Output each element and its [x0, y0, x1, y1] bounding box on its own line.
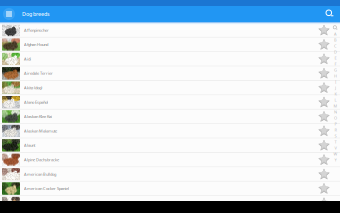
staticText: E — [334, 55, 336, 61]
button[interactable]: American Cocker Spaniel — [0, 182, 340, 196]
button[interactable]: M — [332, 103, 339, 109]
staticText: K — [334, 91, 336, 97]
button[interactable]: R — [332, 127, 339, 133]
staticText: V — [334, 145, 336, 151]
staticText: O — [334, 115, 337, 121]
button[interactable]: I — [332, 79, 339, 85]
button[interactable]: Alaunt — [0, 139, 340, 153]
staticText: C — [334, 43, 337, 49]
button[interactable]: American Bulldog — [0, 167, 340, 182]
button[interactable]: Alano Español — [0, 95, 340, 110]
staticText: F — [334, 61, 336, 67]
staticText: Alaskan Malamute — [24, 128, 57, 133]
button[interactable]: A — [332, 31, 339, 37]
staticText: Y — [334, 157, 336, 163]
staticText: Alaunt — [24, 143, 35, 148]
button[interactable]: Y — [332, 157, 339, 163]
staticText: B — [334, 37, 337, 43]
button[interactable]: B — [332, 37, 339, 43]
staticText: N — [334, 109, 337, 115]
button[interactable]: Alaskan Klee Kai — [0, 110, 340, 124]
button[interactable]: F — [332, 61, 339, 67]
button[interactable]: Afghan Hound — [0, 38, 340, 52]
button[interactable]: W — [332, 151, 339, 157]
button[interactable]: C — [332, 43, 339, 49]
staticText: M — [333, 103, 337, 109]
staticText: P — [334, 121, 336, 127]
button[interactable]: L — [332, 97, 339, 103]
staticText: T — [334, 139, 336, 145]
staticText: Afghan Hound — [24, 42, 48, 47]
staticText: Akita (dog) — [24, 85, 42, 90]
staticText: H — [334, 73, 337, 79]
button[interactable]: E — [332, 55, 339, 61]
staticText: A — [334, 31, 337, 37]
button[interactable]: Search breeds — [332, 25, 339, 31]
staticText: L — [334, 97, 336, 103]
staticText: W — [333, 151, 337, 157]
button[interactable]: O — [332, 115, 339, 121]
staticText: D — [334, 49, 337, 55]
staticText: Alaskan Klee Kai — [24, 114, 52, 119]
button[interactable]: American Eskimo Dog — [0, 196, 340, 211]
button[interactable]: H — [332, 73, 339, 79]
staticText: J — [335, 85, 336, 91]
staticText: G — [334, 67, 337, 73]
staticText: S — [334, 133, 336, 139]
button[interactable]: Open navigation menu — [0, 6, 21, 22]
button[interactable]: Aidi — [0, 52, 340, 67]
staticText: Alano Español — [24, 99, 48, 105]
button[interactable]: N — [332, 109, 339, 115]
button[interactable]: Airedale Terrier — [0, 67, 340, 81]
staticText: R — [334, 127, 336, 133]
staticText: American Bulldog — [24, 171, 56, 177]
button[interactable]: P — [332, 121, 339, 127]
button[interactable]: S — [332, 133, 339, 139]
button[interactable]: J — [332, 85, 339, 91]
button[interactable]: D — [332, 49, 339, 55]
staticText: Aidi — [24, 56, 31, 61]
button[interactable]: T — [332, 139, 339, 145]
button[interactable]: Akita (dog) — [0, 81, 340, 95]
button[interactable]: Affenpinscher — [0, 23, 340, 38]
staticText: American Eskimo Dog — [24, 200, 64, 205]
staticText: Affenpinscher — [24, 27, 49, 33]
button[interactable]: Search — [326, 6, 340, 22]
button[interactable]: G — [332, 67, 339, 73]
button[interactable]: K — [332, 91, 339, 97]
button[interactable]: Alpine Dachsbracke — [0, 153, 340, 167]
staticText: I — [335, 79, 336, 85]
staticText: Alpine Dachsbracke — [24, 157, 59, 162]
staticText: American Cocker Spaniel — [24, 186, 69, 191]
button[interactable]: Alaskan Malamute — [0, 124, 340, 139]
staticText: Dog breeds — [22, 10, 50, 18]
staticText: Airedale Terrier — [24, 71, 53, 76]
button[interactable]: V — [332, 145, 339, 151]
